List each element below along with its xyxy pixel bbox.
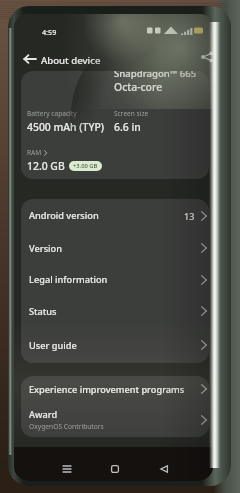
staticText: Screen size xyxy=(114,109,149,118)
staticText: User guide xyxy=(29,339,77,352)
staticText: Experience improvement programs xyxy=(29,383,185,396)
button[interactable]: RAM xyxy=(27,148,47,157)
staticText: Status xyxy=(29,305,57,318)
staticText: OxygenOS Contributors xyxy=(29,422,104,431)
staticText: Legal information xyxy=(29,273,108,286)
staticText: Battery capacity xyxy=(27,109,77,118)
staticText: 6.6 in xyxy=(114,120,141,134)
staticText: Award xyxy=(29,408,58,421)
staticText: 12.0 GB xyxy=(27,159,65,173)
staticText: About device xyxy=(41,54,101,67)
button[interactable]: Experience improvement programs xyxy=(21,376,209,402)
button[interactable]: Share xyxy=(196,46,213,68)
button[interactable]: Version xyxy=(21,232,209,264)
button[interactable]: Status xyxy=(21,295,209,327)
button[interactable]: Android version xyxy=(21,199,209,232)
button[interactable]: Legal information xyxy=(21,264,209,295)
button[interactable]: Award xyxy=(21,402,209,437)
button[interactable]: Back xyxy=(151,456,177,481)
staticText: +3.00 GB xyxy=(73,162,98,170)
button[interactable]: About device xyxy=(41,54,101,67)
staticText: 13 xyxy=(184,210,195,222)
staticText: Octa-core xyxy=(114,80,163,94)
staticText: Version xyxy=(29,242,62,255)
button[interactable]: User guide xyxy=(21,327,209,363)
button[interactable]: Recent apps xyxy=(54,456,80,481)
staticText: 4500 mAh (TYP) xyxy=(27,120,105,134)
staticText: Android version xyxy=(29,209,99,222)
button[interactable]: Home xyxy=(102,456,128,481)
button[interactable]: Back xyxy=(18,48,40,70)
staticText: 4:59 xyxy=(42,27,57,37)
staticText: Snapdragon™ 665 xyxy=(114,71,197,80)
staticText: RAM xyxy=(27,148,42,157)
